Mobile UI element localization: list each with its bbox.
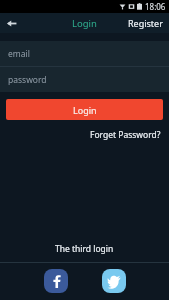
button[interactable]: Login with Facebook bbox=[44, 269, 68, 293]
button[interactable]: Back bbox=[0, 13, 22, 33]
staticText: email bbox=[8, 48, 30, 60]
staticText: password bbox=[8, 74, 47, 86]
staticText: Login bbox=[72, 17, 97, 30]
button[interactable]: Login bbox=[6, 99, 163, 120]
staticText: Login bbox=[73, 104, 97, 116]
staticText: Forget Password? bbox=[90, 129, 161, 141]
button[interactable]: email bbox=[0, 41, 169, 66]
staticText: Register bbox=[128, 17, 163, 29]
button[interactable]: password bbox=[0, 67, 169, 92]
button[interactable]: Register bbox=[122, 14, 169, 32]
staticText: The third login bbox=[55, 243, 114, 255]
button[interactable]: Forget Password? bbox=[86, 125, 165, 145]
staticText: 18:06 bbox=[145, 1, 166, 12]
button[interactable]: Login with Twitter bbox=[102, 269, 126, 293]
